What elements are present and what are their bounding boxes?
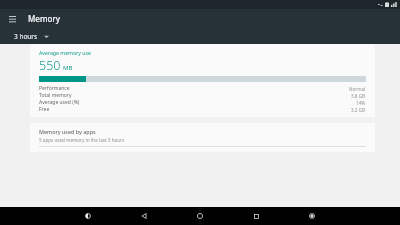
button[interactable]: 3 hours <box>14 32 49 41</box>
button[interactable]: Memory used by apps <box>30 123 375 152</box>
staticText: Memory used by apps <box>39 128 96 135</box>
button[interactable]: Screenshot <box>304 208 320 224</box>
staticText: 3.8 GB <box>351 93 366 99</box>
staticText: Memory <box>28 13 61 24</box>
button[interactable]: Open navigation drawer <box>5 12 19 26</box>
staticText: Total memory <box>39 92 72 99</box>
staticText: Free <box>39 106 50 113</box>
button[interactable]: Recent apps <box>248 208 264 224</box>
staticText: 3.2 GB <box>351 107 366 113</box>
button[interactable]: Average memory use <box>30 44 375 117</box>
staticText: 550 <box>39 57 61 74</box>
staticText: Normal <box>349 86 366 92</box>
staticText: Average used (%) <box>39 99 80 106</box>
button[interactable]: Rotate screen <box>80 208 96 224</box>
staticText: 14% <box>356 100 366 106</box>
staticText: 3 hours <box>14 32 38 41</box>
button[interactable]: Home <box>192 208 208 224</box>
staticText: Performance <box>39 85 70 92</box>
button[interactable]: Back <box>136 208 152 224</box>
staticText: 5 apps used memory in the last 3 hours <box>39 137 125 143</box>
staticText: MB <box>63 64 73 72</box>
staticText: Average memory use <box>39 49 91 56</box>
